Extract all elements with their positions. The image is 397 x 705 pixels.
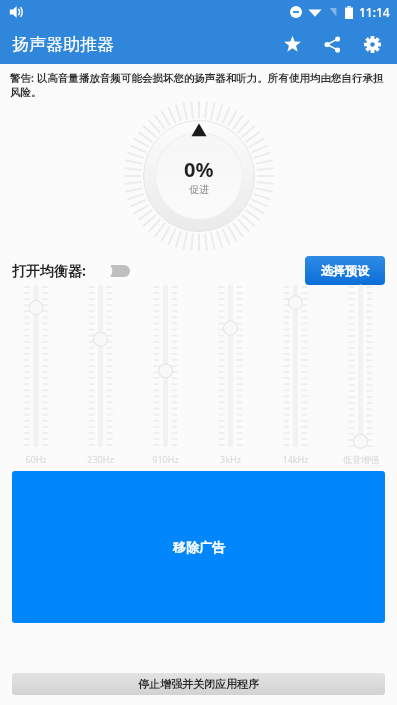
button[interactable]: Settings	[355, 27, 389, 61]
button[interactable]: 选择预设	[305, 256, 385, 285]
staticText: 选择预设	[321, 263, 369, 278]
staticText: 促进	[189, 183, 209, 196]
button[interactable]: 60Hz band	[4, 285, 68, 453]
staticText: 11:14	[359, 4, 390, 20]
staticText: 打开均衡器:	[12, 261, 86, 280]
staticText: 警告: 以高音量播放音频可能会损坏您的扬声器和听力。所有使用均由您自行承担风险。	[10, 71, 387, 100]
button[interactable]: 移除广告	[12, 471, 385, 623]
staticText: 扬声器助推器	[12, 34, 114, 55]
staticText: 移除广告	[173, 539, 225, 555]
staticText: 230Hz	[87, 453, 114, 465]
button[interactable]: Rate this app	[275, 27, 309, 61]
staticText: 910Hz	[152, 453, 179, 465]
button[interactable]: 停止增强并关闭应用程序	[12, 673, 385, 695]
staticText: 3kHz	[220, 453, 241, 465]
staticText: 低音增强	[343, 454, 379, 465]
staticText: 0%	[184, 156, 214, 183]
button[interactable]: Boost level dial	[124, 101, 274, 251]
staticText: 14kHz	[282, 453, 309, 465]
button[interactable]: Enable equalizer	[96, 263, 130, 279]
button[interactable]: 910Hz band	[133, 285, 198, 453]
staticText: 60Hz	[25, 453, 47, 465]
button[interactable]: Share	[315, 27, 349, 61]
staticText: 停止增强并关闭应用程序	[138, 677, 259, 691]
button[interactable]: 低音增强 band	[328, 285, 393, 454]
button[interactable]: 14kHz band	[263, 285, 328, 453]
button[interactable]: 230Hz band	[68, 285, 133, 453]
button[interactable]: 3kHz band	[198, 285, 263, 453]
